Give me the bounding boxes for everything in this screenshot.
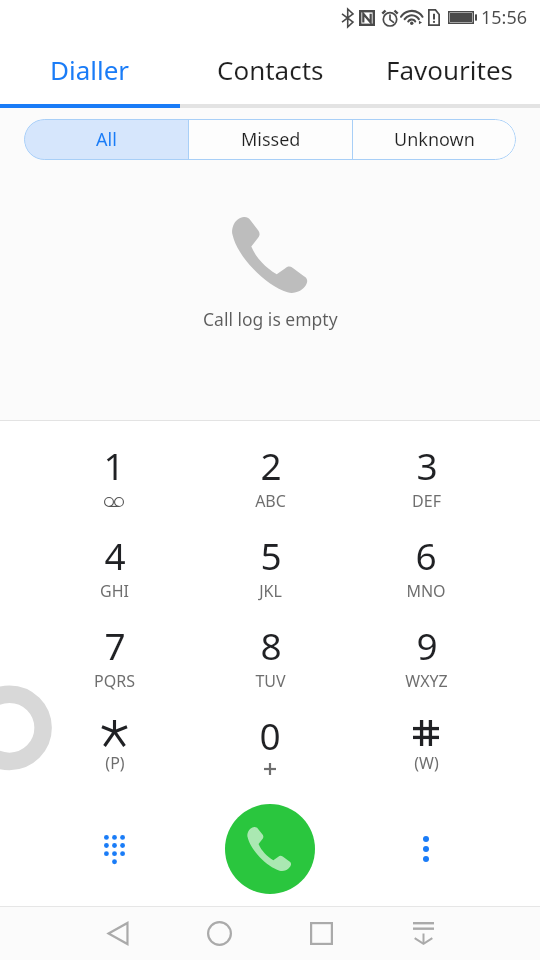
staticText: WXYZ: [405, 670, 448, 692]
button[interactable]: Unknown: [353, 119, 516, 160]
staticText: Call log is empty: [203, 307, 338, 331]
button[interactable]: 8: [192, 620, 348, 710]
button[interactable]: 5: [192, 530, 348, 620]
button[interactable]: Contacts: [180, 34, 360, 104]
staticText: DEF: [412, 490, 441, 512]
button[interactable]: 0: [192, 710, 348, 800]
button[interactable]: (P): [36, 710, 192, 800]
staticText: PQRS: [94, 670, 135, 692]
button[interactable]: Call: [225, 804, 315, 894]
button[interactable]: 7: [36, 620, 192, 710]
staticText: Dialler: [50, 52, 130, 87]
button[interactable]: 6: [348, 530, 504, 620]
staticText: 6: [415, 530, 437, 576]
button[interactable]: 1: [36, 440, 192, 530]
button[interactable]: More options: [396, 819, 456, 879]
staticText: Contacts: [217, 52, 324, 87]
staticText: Favourites: [386, 52, 514, 87]
staticText: 2: [260, 440, 282, 486]
button[interactable]: Home: [191, 908, 247, 958]
staticText: TUV: [255, 670, 286, 692]
button[interactable]: Dialler: [0, 34, 180, 104]
staticText: 0: [259, 710, 281, 756]
button[interactable]: 4: [36, 530, 192, 620]
staticText: Unknown: [394, 127, 475, 152]
staticText: 9: [416, 620, 438, 666]
staticText: All: [96, 127, 117, 152]
staticText: 8: [260, 620, 282, 666]
button[interactable]: 2: [192, 440, 348, 530]
staticText: (W): [414, 752, 439, 774]
button[interactable]: 9: [348, 620, 504, 710]
staticText: 15:56: [481, 5, 528, 30]
staticText: 3: [416, 440, 438, 486]
button[interactable]: Hide navigation bar: [395, 908, 451, 958]
staticText: ABC: [255, 490, 286, 512]
staticText: JKL: [259, 580, 282, 602]
staticText: 4: [104, 530, 126, 576]
staticText: Missed: [241, 127, 301, 152]
staticText: 7: [104, 620, 126, 666]
button[interactable]: Show dialpad: [84, 819, 144, 879]
staticText: GHI: [100, 580, 129, 602]
button[interactable]: (W): [348, 710, 504, 800]
button[interactable]: All: [24, 119, 188, 160]
staticText: 5: [260, 530, 282, 576]
button[interactable]: Recents: [293, 908, 349, 958]
button[interactable]: Missed: [189, 119, 352, 160]
button[interactable]: Favourites: [360, 34, 540, 104]
button[interactable]: 3: [348, 440, 504, 530]
staticText: MNO: [406, 580, 446, 602]
staticText: 1: [103, 440, 125, 486]
staticText: (P): [105, 752, 125, 774]
button[interactable]: Back: [90, 908, 146, 958]
